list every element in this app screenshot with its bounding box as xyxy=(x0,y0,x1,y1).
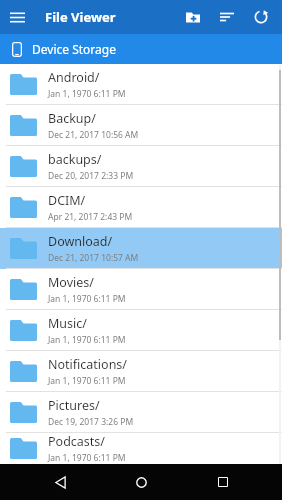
staticText: Apr 21, 2017 2:43 PM xyxy=(48,211,133,223)
staticText: DCIM/ xyxy=(48,192,86,209)
staticText: Jan 1, 1970 6:11 PM xyxy=(48,334,126,346)
staticText: Jan 1, 1970 6:11 PM xyxy=(48,375,126,387)
staticText: Dec 19, 2017 3:26 PM xyxy=(48,416,134,428)
staticText: Jan 1, 1970 6:11 PM xyxy=(48,452,126,464)
button[interactable]: Refresh xyxy=(244,0,278,34)
staticText: Pictures/ xyxy=(48,397,100,414)
staticText: Backup/ xyxy=(48,110,96,127)
staticText: Dec 20, 2017 2:33 PM xyxy=(48,170,134,182)
button[interactable]: Download/ xyxy=(0,228,282,269)
button[interactable]: New folder xyxy=(176,0,210,34)
staticText: Device Storage xyxy=(32,41,116,57)
button[interactable]: Music/ xyxy=(0,310,282,351)
staticText: backups/ xyxy=(48,151,102,168)
button[interactable]: Back xyxy=(38,464,82,500)
button[interactable]: Recent apps xyxy=(201,464,245,500)
button[interactable]: Android/ xyxy=(0,64,282,105)
button[interactable]: Sort xyxy=(210,0,244,34)
staticText: Download/ xyxy=(48,233,113,250)
staticText: File Viewer xyxy=(45,8,116,26)
staticText: Android/ xyxy=(48,69,100,86)
staticText: Jan 1, 1970 6:11 PM xyxy=(48,293,126,305)
button[interactable]: Open navigation menu xyxy=(0,0,34,34)
staticText: Movies/ xyxy=(48,274,94,291)
button[interactable]: Notifications/ xyxy=(0,351,282,392)
button[interactable]: Device Storage xyxy=(0,34,282,64)
staticText: Dec 21, 2017 10:56 AM xyxy=(48,129,139,141)
button[interactable]: Pictures/ xyxy=(0,392,282,433)
button[interactable]: Podcasts/ xyxy=(0,433,282,464)
staticText: Dec 21, 2017 10:57 AM xyxy=(48,252,139,264)
staticText: Notifications/ xyxy=(48,356,128,373)
button[interactable]: Backup/ xyxy=(0,105,282,146)
button[interactable]: DCIM/ xyxy=(0,187,282,228)
button[interactable]: Movies/ xyxy=(0,269,282,310)
staticText: Jan 1, 1970 6:11 PM xyxy=(48,88,126,100)
button[interactable]: Home xyxy=(119,464,163,500)
staticText: Podcasts/ xyxy=(48,433,105,450)
button[interactable]: backups/ xyxy=(0,146,282,187)
staticText: Music/ xyxy=(48,315,87,332)
